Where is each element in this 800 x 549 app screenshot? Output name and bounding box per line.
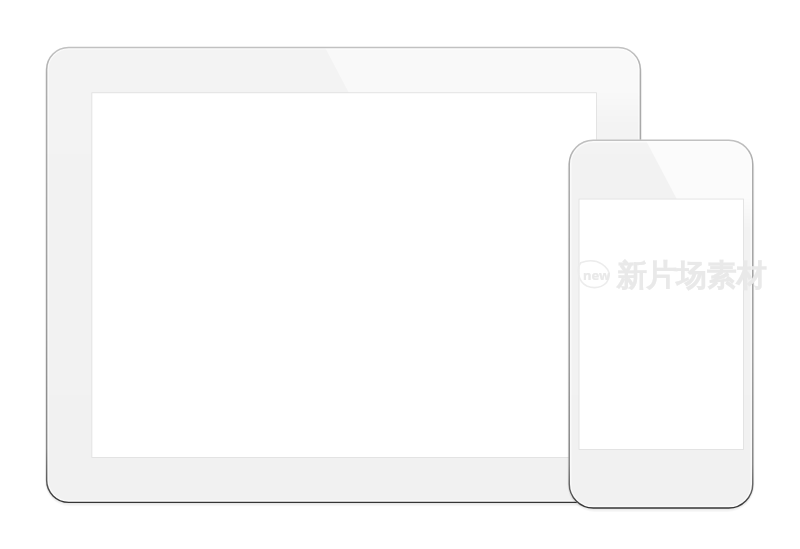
staticText: new: [583, 266, 611, 284]
staticText: 新片场素材: [616, 257, 766, 295]
button[interactable]: Smartphone: [569, 140, 754, 509]
button[interactable]: Tablet: [46, 47, 641, 503]
